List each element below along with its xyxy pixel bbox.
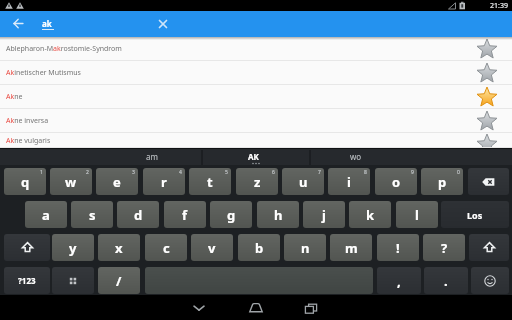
button[interactable]: i — [328, 168, 370, 195]
button[interactable]: l — [396, 201, 438, 228]
button[interactable] — [145, 267, 373, 294]
staticText: Akne inversa — [6, 116, 49, 126]
button[interactable]: c — [145, 234, 187, 261]
button[interactable]: z — [236, 168, 278, 195]
button[interactable] — [476, 86, 498, 108]
staticText: q — [21, 173, 30, 191]
staticText: w — [65, 173, 77, 191]
button[interactable]: v — [191, 234, 233, 261]
button[interactable]: s — [71, 201, 113, 228]
button[interactable]: AK — [248, 151, 259, 162]
staticText: ak — [42, 18, 52, 29]
staticText: p — [438, 173, 447, 191]
button[interactable]: b — [238, 234, 280, 261]
staticText: r — [161, 173, 167, 191]
button[interactable] — [6, 11, 30, 35]
staticText: . — [444, 272, 448, 290]
staticText: h — [274, 206, 283, 224]
staticText: o — [392, 173, 401, 191]
staticText: Akne vulgaris — [6, 136, 51, 146]
button[interactable]: Akne inversa — [0, 109, 512, 133]
staticText: 3 — [132, 169, 135, 176]
button[interactable]: k — [349, 201, 391, 228]
staticText: k — [366, 206, 375, 224]
staticText: d — [134, 206, 143, 224]
button[interactable] — [476, 62, 498, 84]
button[interactable]: r — [143, 168, 185, 195]
staticText: i — [347, 173, 351, 191]
button[interactable] — [471, 267, 509, 294]
button[interactable]: am — [146, 151, 158, 162]
button[interactable]: wo — [350, 151, 362, 162]
button[interactable]: u — [282, 168, 324, 195]
button[interactable] — [469, 234, 509, 261]
button[interactable]: q — [4, 168, 46, 195]
staticText: s — [89, 206, 96, 224]
button[interactable]: t — [189, 168, 231, 195]
button[interactable]: y — [52, 234, 94, 261]
button[interactable]: j — [303, 201, 345, 228]
button[interactable] — [242, 295, 270, 320]
button[interactable]: Akne — [0, 85, 512, 109]
button[interactable]: w — [50, 168, 92, 195]
staticText: Los — [467, 209, 483, 221]
button[interactable] — [4, 234, 50, 261]
button[interactable]: e — [96, 168, 138, 195]
button[interactable] — [150, 11, 176, 37]
button[interactable] — [185, 295, 213, 320]
button[interactable]: p — [421, 168, 463, 195]
button[interactable]: h — [257, 201, 299, 228]
staticText: y — [69, 239, 77, 257]
staticText: / — [116, 272, 122, 290]
staticText: u — [299, 173, 308, 191]
button[interactable] — [476, 110, 498, 132]
button[interactable]: ! — [377, 234, 419, 261]
staticText: 2 — [86, 169, 89, 176]
staticText: , — [397, 272, 401, 290]
staticText: m — [345, 239, 358, 257]
staticText: z — [254, 173, 261, 191]
staticText: b — [255, 239, 264, 257]
button[interactable]: g — [210, 201, 252, 228]
staticText: t — [207, 173, 213, 191]
button[interactable]: Akne vulgaris — [0, 133, 512, 148]
button[interactable]: ? — [423, 234, 465, 261]
staticText: Ablepharon-Makrostomie-Syndrom — [6, 44, 122, 54]
staticText: 1 — [40, 169, 43, 176]
button[interactable]: f — [164, 201, 206, 228]
button[interactable]: d — [117, 201, 159, 228]
staticText: 8 — [364, 169, 367, 176]
staticText: g — [227, 206, 236, 224]
button[interactable]: ?123 — [4, 267, 50, 294]
staticText: 5 — [225, 169, 228, 176]
button[interactable] — [297, 295, 325, 320]
staticText: 9 — [411, 169, 414, 176]
button[interactable] — [468, 168, 509, 195]
staticText: a — [42, 206, 50, 224]
staticText: 6 — [272, 169, 275, 176]
button[interactable]: n — [284, 234, 326, 261]
button[interactable]: Akinetischer Mutismus — [0, 61, 512, 85]
button[interactable]: o — [375, 168, 417, 195]
button[interactable]: / — [98, 267, 140, 294]
button[interactable]: a — [25, 201, 67, 228]
button[interactable]: m — [330, 234, 372, 261]
staticText: ? — [441, 239, 448, 257]
staticText: l — [415, 206, 419, 224]
button[interactable] — [476, 133, 498, 148]
button[interactable]: . — [424, 267, 468, 294]
staticText: j — [322, 206, 326, 224]
button[interactable]: , — [377, 267, 421, 294]
button[interactable] — [52, 267, 94, 294]
button[interactable]: Ablepharon-Makrostomie-Syndrom — [0, 37, 512, 61]
button[interactable]: x — [98, 234, 140, 261]
staticText: n — [301, 239, 310, 257]
button[interactable]: Los — [441, 201, 509, 228]
staticText: Akinetischer Mutismus — [6, 68, 81, 78]
staticText: 21:39 — [490, 1, 508, 11]
staticText: c — [163, 239, 170, 257]
staticText: 4 — [179, 169, 182, 176]
staticText: 0 — [457, 169, 460, 176]
staticText: x — [115, 239, 123, 257]
button[interactable] — [476, 38, 498, 60]
